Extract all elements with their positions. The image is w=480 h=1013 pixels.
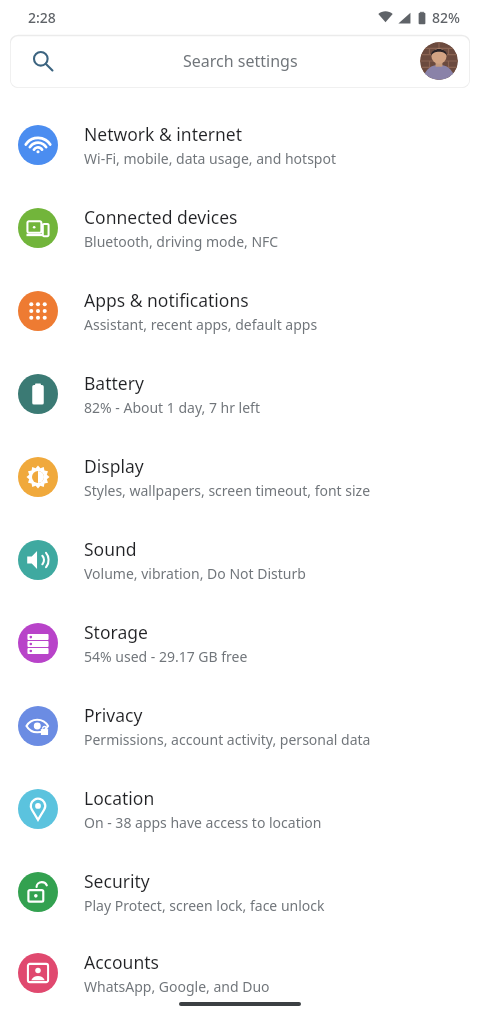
button[interactable]: Account avatar [420,42,458,80]
staticText: 54% used - 29.17 GB free [84,647,248,666]
staticText: Assistant, recent apps, default apps [84,315,318,334]
staticText: Network & internet [84,122,243,146]
staticText: Display [84,454,144,478]
staticText: Privacy [84,703,143,727]
button[interactable]: Network & internet [0,103,480,186]
staticText: Permissions, account activity, personal … [84,730,371,749]
button[interactable]: Display [0,435,480,518]
staticText: On - 38 apps have access to location [84,813,322,832]
staticText: Battery [84,371,144,395]
button[interactable]: Storage [0,601,480,684]
staticText: Location [84,786,155,810]
button[interactable]: Search [10,34,470,88]
staticText: Connected devices [84,205,238,229]
staticText: 2:28 [28,8,56,27]
button[interactable]: Battery [0,352,480,435]
button[interactable]: Sound [0,518,480,601]
button[interactable]: Accounts [0,933,480,1013]
staticText: Search settings [183,50,298,72]
staticText: Styles, wallpapers, screen timeout, font… [84,481,371,500]
staticText: Bluetooth, driving mode, NFC [84,232,279,251]
staticText: Volume, vibration, Do Not Disturb [84,564,306,583]
button[interactable]: Connected devices [0,186,480,269]
staticText: WhatsApp, Google, and Duo [84,977,270,996]
button[interactable]: Location [0,767,480,850]
other: Search [32,50,54,72]
staticText: Sound [84,537,137,561]
staticText: Security [84,869,150,893]
button[interactable]: Security [0,850,480,933]
staticText: Storage [84,620,148,644]
staticText: Apps & notifications [84,288,249,312]
button[interactable]: Apps & notifications [0,269,480,352]
staticText: 82% - About 1 day, 7 hr left [84,398,260,417]
staticText: Wi-Fi, mobile, data usage, and hotspot [84,149,336,168]
staticText: Play Protect, screen lock, face unlock [84,896,325,915]
staticText: 82% [432,8,460,27]
staticText: Accounts [84,950,159,974]
button[interactable]: Privacy [0,684,480,767]
